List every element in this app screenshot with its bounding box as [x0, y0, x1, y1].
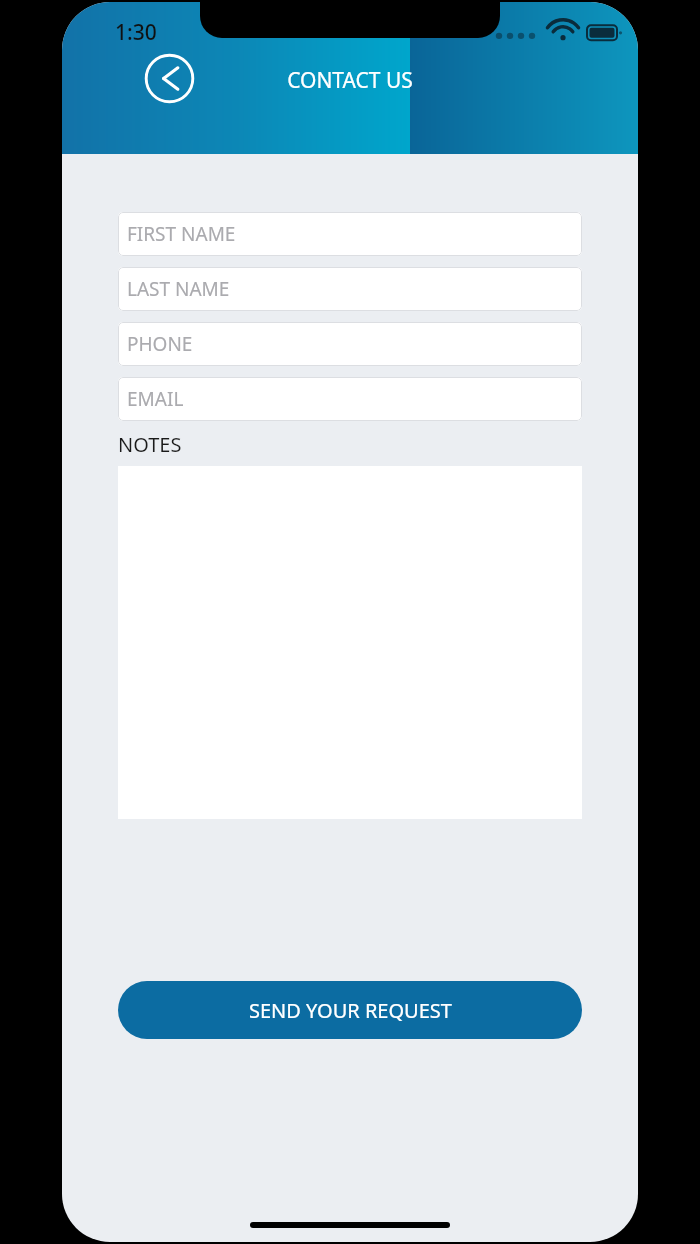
button[interactable]: EMAIL — [118, 377, 582, 421]
button[interactable]: Back — [144, 53, 195, 104]
staticText: NOTES — [118, 431, 182, 458]
staticText: SEND YOUR REQUEST — [249, 997, 452, 1024]
staticText: EMAIL — [127, 386, 184, 412]
staticText: PHONE — [127, 331, 193, 357]
staticText: LAST NAME — [127, 276, 230, 302]
button[interactable]: LAST NAME — [118, 267, 582, 311]
button[interactable]: FIRST NAME — [118, 212, 582, 256]
staticText: 1:30 — [115, 18, 157, 47]
button[interactable]: PHONE — [118, 322, 582, 366]
staticText: CONTACT US — [62, 66, 638, 95]
staticText: FIRST NAME — [127, 221, 236, 247]
button[interactable]: SEND YOUR REQUEST — [118, 981, 582, 1039]
